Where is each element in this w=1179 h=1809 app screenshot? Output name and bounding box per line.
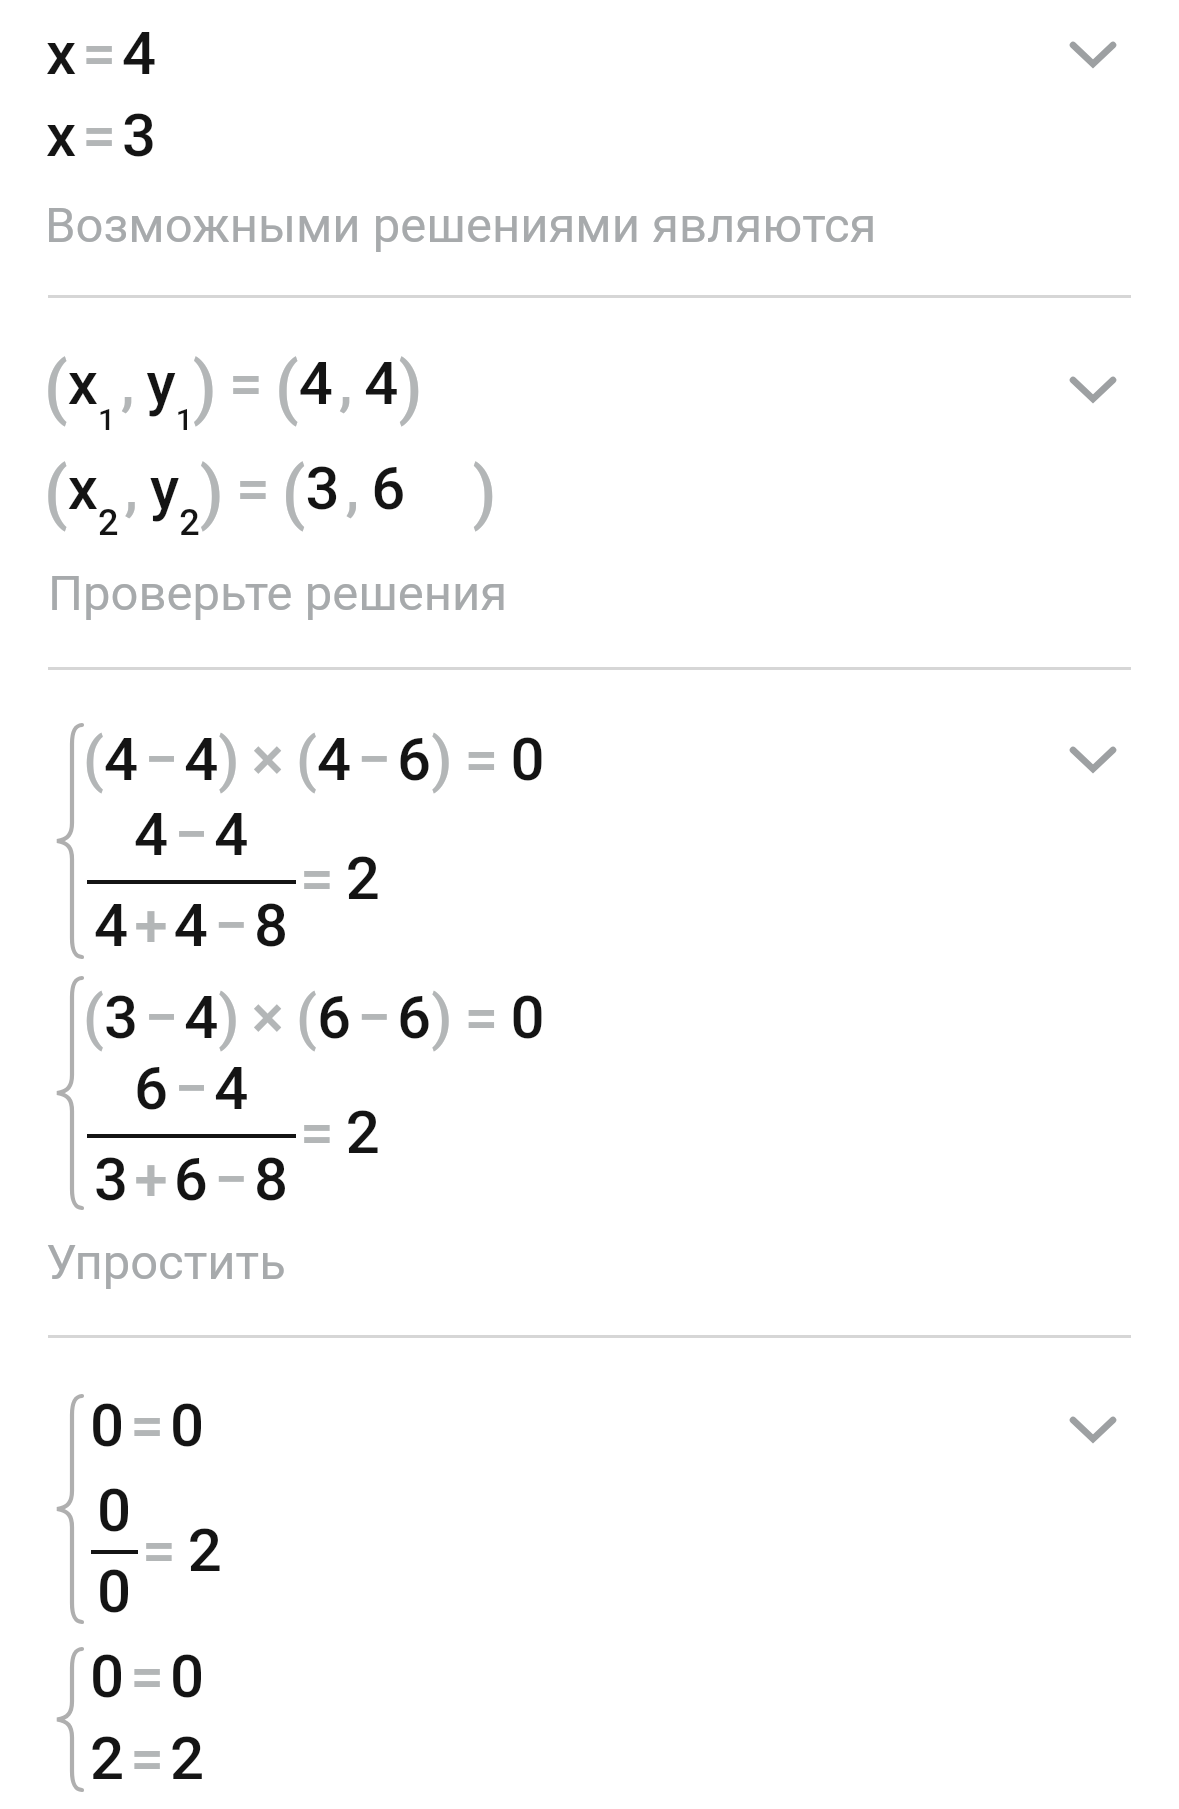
button[interactable] — [0, 14, 1179, 100]
staticText: (x2 , y2) = (3 , 6 ) — [44, 453, 497, 544]
staticText: = 2 — [300, 843, 380, 913]
staticText: 6 − 4 — [134, 1053, 249, 1123]
staticText: Упростить — [46, 1234, 286, 1291]
staticText: x = 4 — [46, 18, 157, 88]
staticText: Возможными решениями являются — [45, 197, 877, 254]
staticText: 0 = 0 — [90, 1641, 205, 1711]
staticText: (4 − 4) × (4 − 6) = 0 — [83, 724, 545, 794]
staticText: 4 + 4 − 8 — [94, 890, 289, 960]
staticText: 3 + 6 − 8 — [94, 1144, 289, 1214]
staticText: 2 = 2 — [90, 1723, 205, 1793]
button[interactable] — [0, 715, 1179, 803]
staticText: 4 − 4 — [134, 799, 249, 869]
staticText: = 2 — [142, 1515, 222, 1585]
staticText: (x1 , y1) = (4 , 4) — [44, 348, 423, 437]
staticText: (3 − 4) × (6 − 6) = 0 — [83, 982, 545, 1052]
staticText: = 2 — [300, 1097, 380, 1167]
staticText: 0 — [97, 1556, 132, 1626]
staticText: 0 = 0 — [90, 1390, 205, 1460]
staticText: 0 — [97, 1475, 132, 1545]
button[interactable] — [0, 1385, 1179, 1473]
staticText: x = 3 — [46, 100, 157, 170]
staticText: Проверьте решения — [48, 565, 508, 622]
button[interactable] — [0, 345, 1179, 433]
